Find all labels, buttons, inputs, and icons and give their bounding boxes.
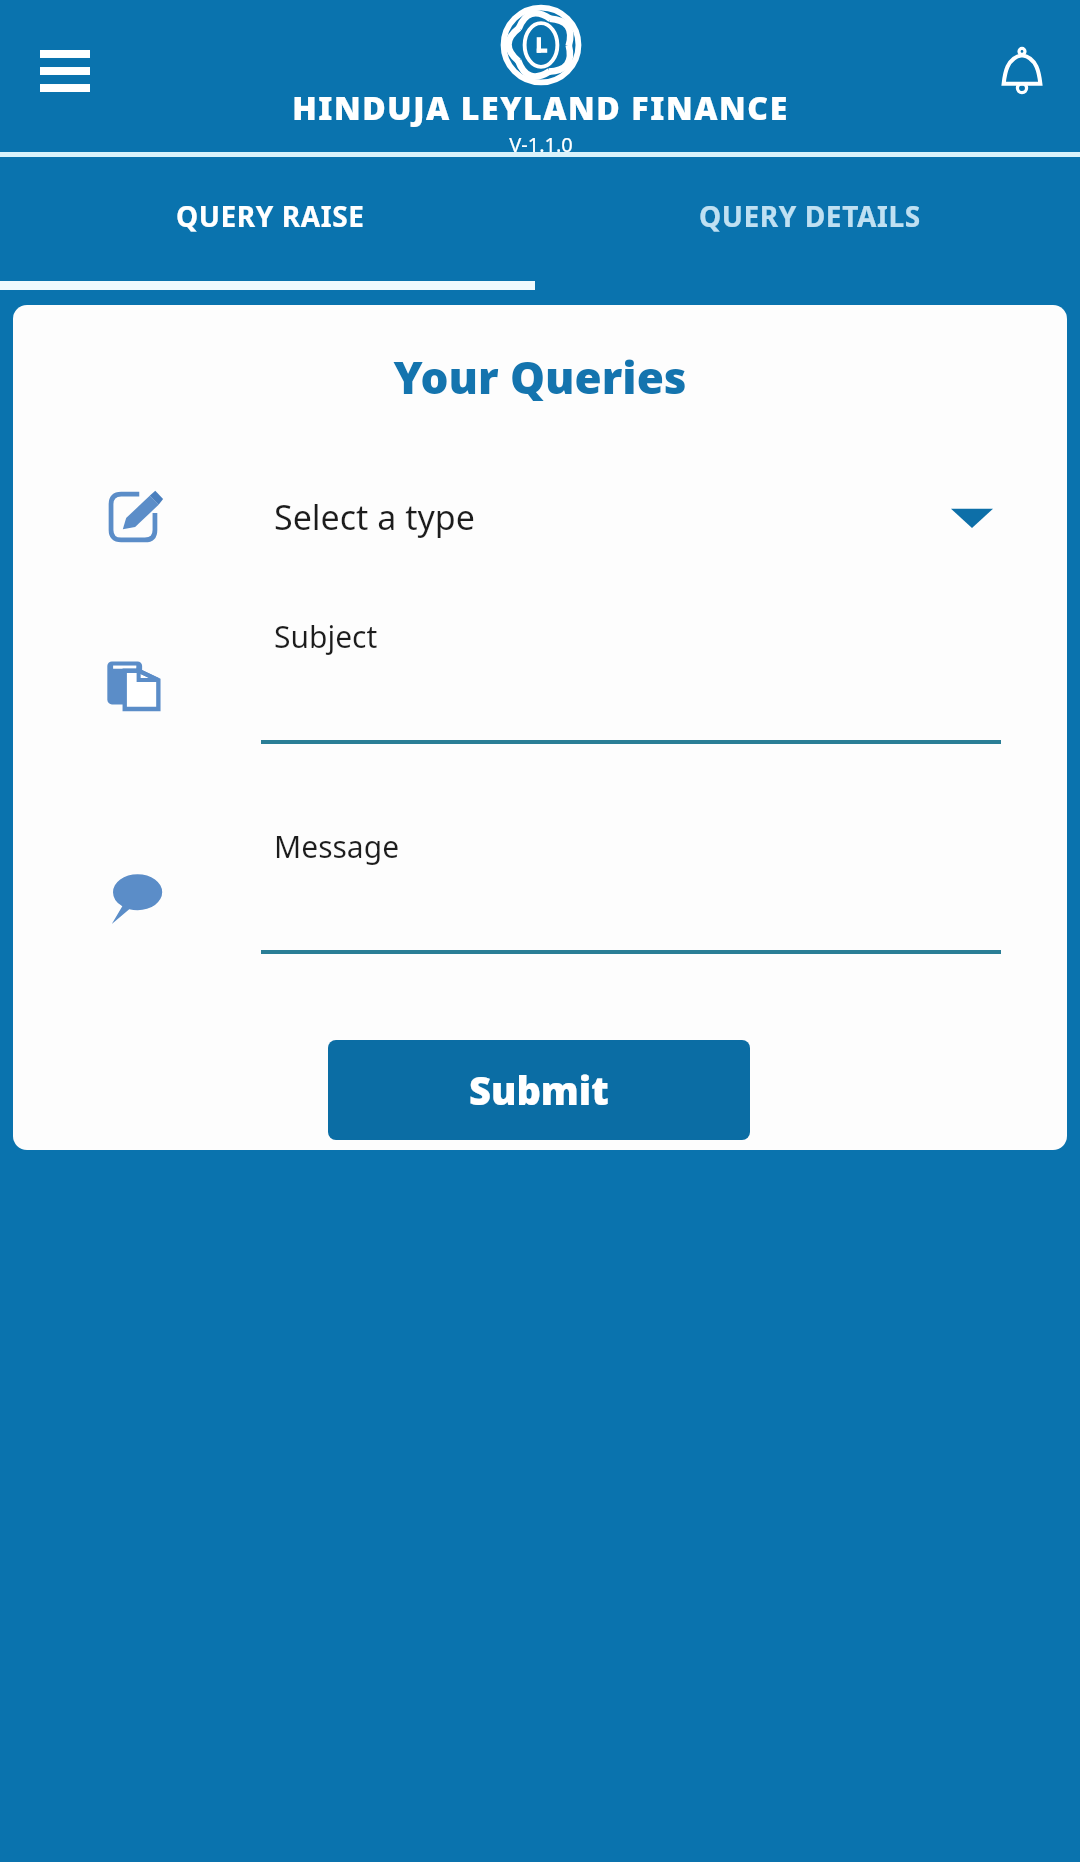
- button[interactable]: Notifications: [982, 33, 1062, 113]
- staticText: Message: [274, 826, 400, 867]
- button[interactable]: Submit: [328, 1040, 750, 1140]
- button[interactable]: QUERY RAISE: [0, 157, 540, 290]
- staticText: V-1.1.0: [509, 131, 573, 158]
- staticText: HINDUJA LEYLAND FINANCE: [292, 86, 789, 130]
- staticText: Subject: [274, 616, 378, 657]
- button[interactable]: Select a type: [13, 467, 1067, 567]
- staticText: Submit: [469, 1064, 609, 1116]
- staticText: Select a type: [274, 494, 475, 540]
- staticText: Your Queries: [13, 347, 1067, 407]
- staticText: QUERY RAISE: [176, 197, 365, 235]
- button[interactable]: QUERY DETAILS: [540, 157, 1080, 290]
- staticText: QUERY DETAILS: [699, 197, 921, 235]
- button[interactable]: Subject: [13, 612, 1067, 762]
- button[interactable]: Menu: [30, 35, 100, 107]
- button[interactable]: Message: [13, 822, 1067, 972]
